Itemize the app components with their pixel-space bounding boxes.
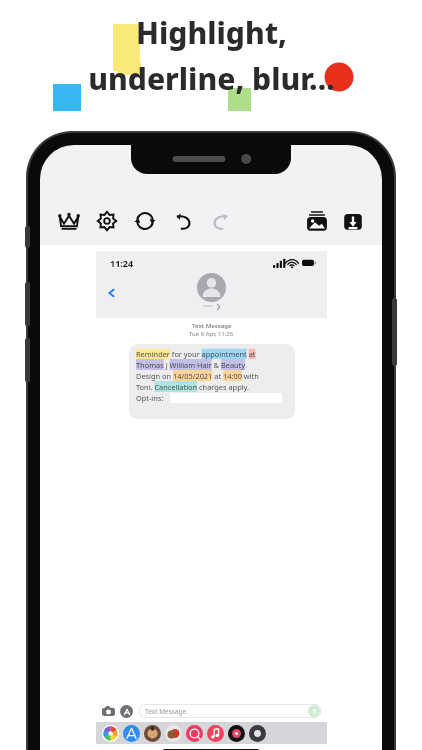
button[interactable]: Premium (56, 208, 82, 234)
button[interactable]: Camera (102, 705, 115, 718)
button[interactable]: Redo (208, 208, 234, 234)
button[interactable]: Send (308, 705, 320, 717)
button[interactable]: App (144, 725, 161, 742)
button[interactable]: App (165, 725, 182, 742)
staticText: Text Message (145, 707, 187, 716)
staticText: Reminder for your appointment at Thomas … (136, 349, 259, 403)
staticText: Text Message (192, 322, 232, 330)
button[interactable]: Rotate (132, 208, 158, 234)
button[interactable]: Save (340, 208, 366, 234)
staticText: Highlight, (136, 12, 287, 53)
staticText: underline, blur... (88, 58, 335, 99)
button[interactable]: Reminder for your appointment at Thomas … (129, 344, 295, 419)
button[interactable]: App (186, 725, 203, 742)
staticText: 11:24 (110, 257, 134, 269)
button[interactable]: Settings (94, 208, 120, 234)
button[interactable]: App (228, 725, 245, 742)
staticText: Tue 6 Apr, 11:26 (189, 330, 234, 338)
button[interactable]: App (207, 725, 224, 742)
button[interactable]: Text Message (139, 704, 321, 718)
button[interactable]: Gallery (304, 208, 330, 234)
button[interactable]: App Store (120, 705, 133, 718)
button[interactable]: App (102, 725, 119, 742)
button[interactable]: App (249, 725, 266, 742)
button[interactable]: App (123, 725, 140, 742)
button[interactable]: Undo (170, 208, 196, 234)
